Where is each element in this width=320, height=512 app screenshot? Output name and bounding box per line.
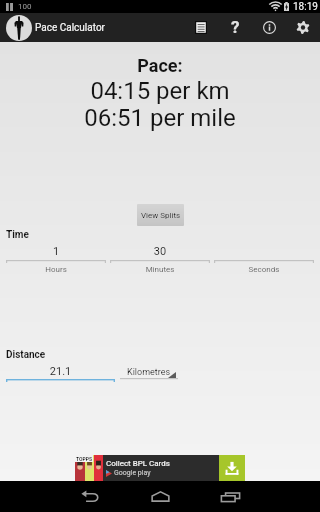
button[interactable]: Home: [125, 481, 195, 512]
staticText: Kilometres: [127, 367, 171, 378]
button[interactable]: 21.1: [6, 364, 115, 382]
button[interactable]: About: [252, 13, 286, 42]
staticText: Seconds: [214, 265, 314, 274]
staticText: Google play: [114, 469, 151, 477]
button[interactable]: 30: [110, 245, 210, 274]
staticText: Pace Calculator: [35, 22, 105, 34]
staticText: 18:19: [293, 1, 318, 13]
button[interactable]: Settings: [286, 13, 320, 42]
staticText: Hours: [6, 265, 106, 274]
button[interactable]: Kilometres: [120, 364, 178, 380]
staticText: Minutes: [110, 265, 210, 274]
button[interactable]: Seconds: [214, 245, 314, 274]
staticText: View Splits: [141, 211, 181, 220]
button[interactable]: Help: [218, 13, 252, 42]
staticText: 1: [6, 245, 106, 258]
button[interactable]: Back: [55, 481, 125, 512]
staticText: Distance: [6, 349, 46, 361]
staticText: 04:15 per km: [0, 77, 320, 105]
button[interactable]: Advertisement: [75, 455, 245, 481]
staticText: TOPPS: [76, 456, 93, 462]
staticText: 21.1: [6, 365, 115, 378]
staticText: Pace:: [0, 55, 320, 76]
button[interactable]: Recent apps: [195, 481, 265, 512]
staticText: 06:51 per mile: [0, 104, 320, 132]
staticText: Collect BPL Cards: [106, 459, 170, 468]
staticText: Time: [6, 229, 29, 241]
button[interactable]: 1: [6, 245, 106, 274]
button[interactable]: Splits list: [184, 13, 218, 42]
staticText: ?: [231, 17, 240, 37]
staticText: 100: [18, 2, 32, 11]
staticText: 30: [110, 245, 210, 258]
button[interactable]: View Splits: [137, 204, 184, 226]
button[interactable]: App icon: [6, 15, 32, 41]
